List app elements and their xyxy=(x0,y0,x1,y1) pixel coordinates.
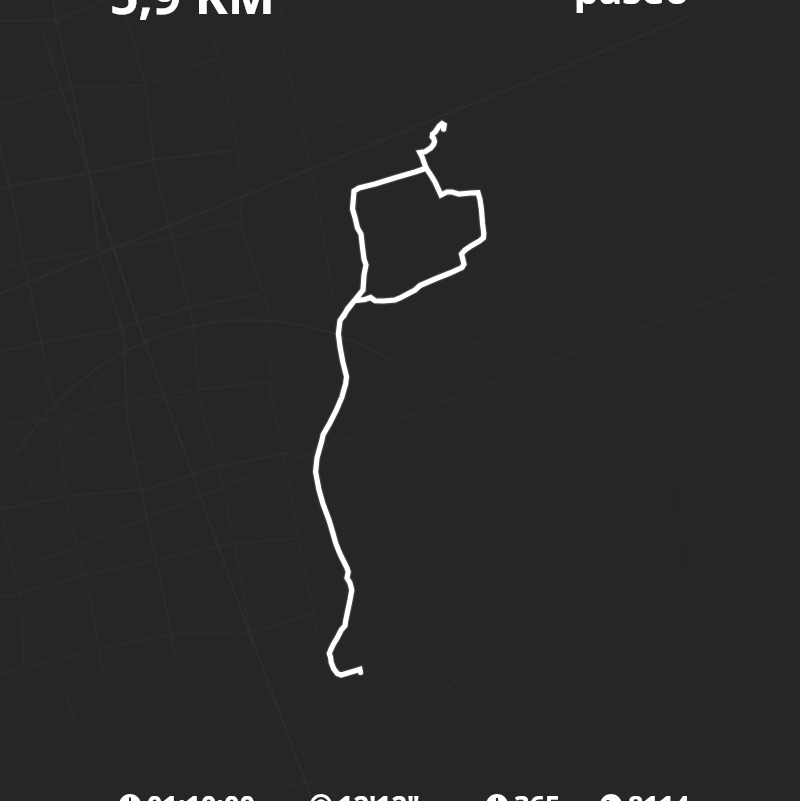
staticText: 12'12" xyxy=(338,786,420,801)
staticText: paseo xyxy=(574,0,690,15)
button[interactable]: Calories xyxy=(486,786,561,801)
button[interactable]: Pace xyxy=(310,786,420,801)
button[interactable]: Steps xyxy=(600,786,690,801)
staticText: 365 xyxy=(514,786,561,801)
staticText: 8114 xyxy=(628,786,690,801)
staticText: 01:10:00 xyxy=(147,786,255,801)
staticText: 5,9 KM xyxy=(110,0,275,29)
button[interactable]: Duration xyxy=(119,786,255,801)
